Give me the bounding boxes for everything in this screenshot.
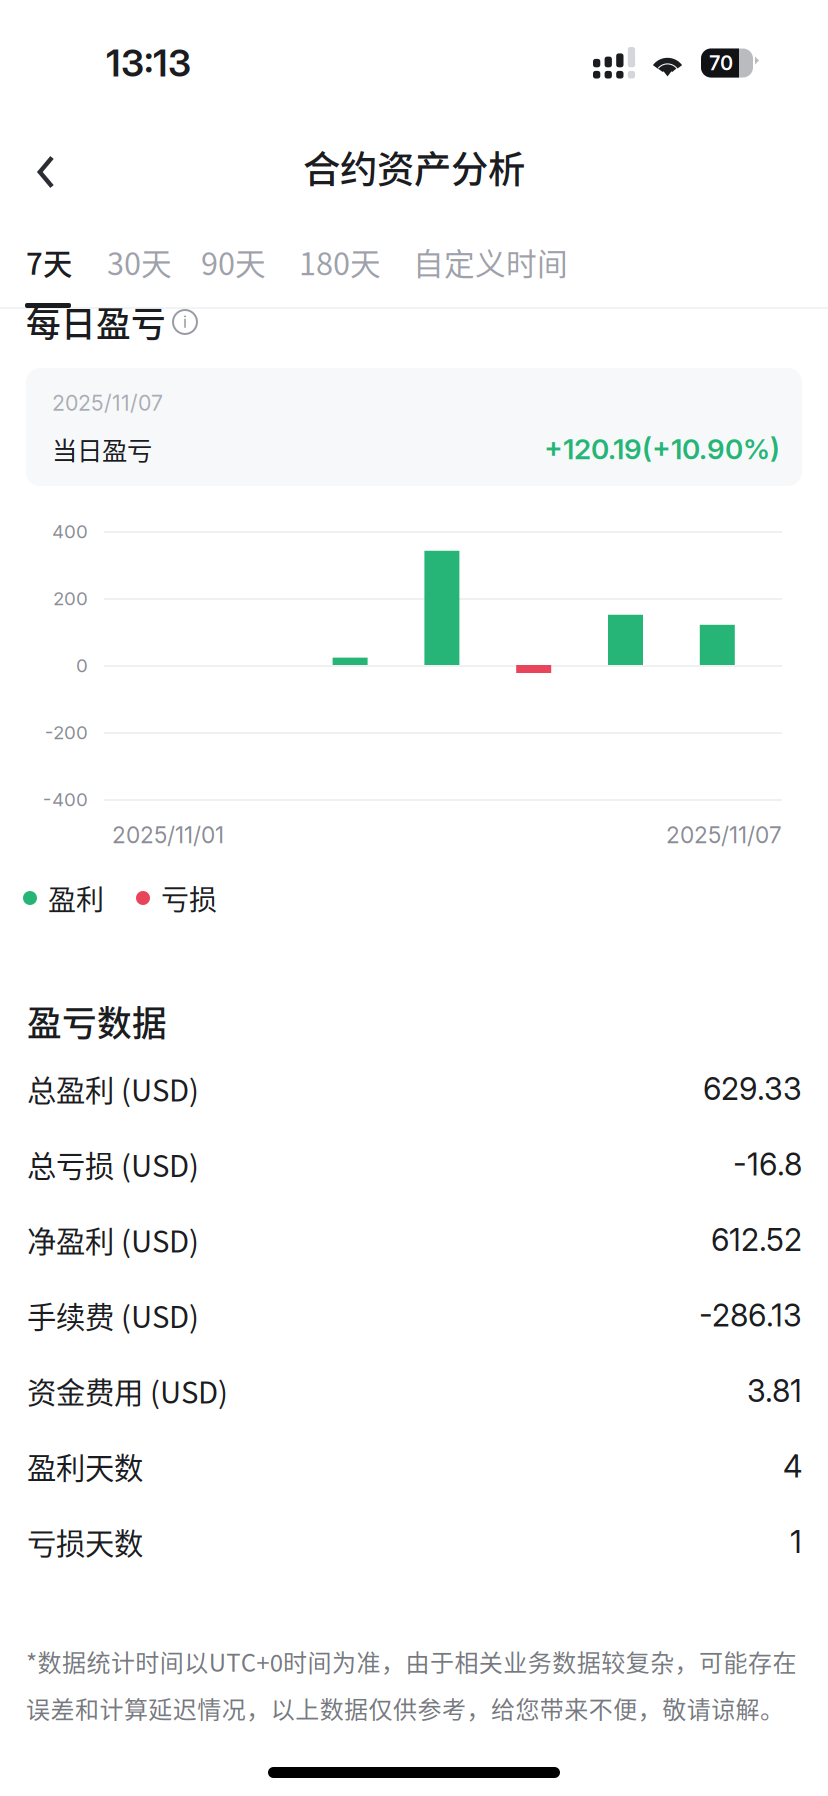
staticText: 30天	[107, 240, 172, 284]
staticText: 资金费用 (USD)	[27, 1369, 228, 1412]
staticText: 手续费 (USD)	[27, 1294, 199, 1336]
staticText: -200	[45, 721, 88, 744]
staticText: 2025/11/07	[52, 390, 163, 416]
staticText: 盈利	[48, 878, 104, 918]
staticText: 每日盈亏	[26, 297, 166, 347]
staticText: 亏损	[161, 878, 217, 918]
staticText: *数据统计时间以UTC+0时间为准，由于相关业务数据较复杂，可能存在	[26, 1644, 796, 1679]
staticText: 总盈利 (USD)	[27, 1067, 199, 1110]
staticText: 自定义时间	[413, 240, 568, 284]
staticText: 400	[52, 520, 88, 543]
staticText: 4	[783, 1448, 802, 1485]
button[interactable]: 90天	[201, 237, 266, 287]
staticText: 612.52	[711, 1221, 802, 1258]
staticText: -16.8	[733, 1146, 802, 1183]
staticText: 2025/11/01	[112, 821, 224, 849]
staticText: 70	[709, 51, 733, 75]
staticText: 629.33	[703, 1070, 802, 1107]
staticText: 2025/11/07	[666, 821, 782, 849]
staticText: 净盈利 (USD)	[27, 1218, 199, 1261]
staticText: 盈利天数	[27, 1445, 143, 1487]
staticText: -286.13	[699, 1297, 802, 1334]
staticText: -400	[43, 788, 88, 811]
staticText: 盈亏数据	[27, 996, 167, 1046]
staticText: 200	[53, 587, 88, 610]
staticText: +120.19(+10.90%)	[544, 432, 780, 466]
button[interactable]	[0, 133, 92, 201]
staticText: 180天	[299, 240, 381, 284]
staticText: 3.81	[747, 1372, 802, 1409]
staticText: 0	[76, 654, 88, 677]
staticText: 当日盈亏	[52, 431, 152, 467]
staticText: 1	[790, 1523, 802, 1560]
button[interactable]: 7天	[26, 237, 72, 287]
staticText: i	[183, 312, 187, 332]
staticText: 合约资产分析	[303, 140, 525, 194]
staticText: 13:13	[106, 40, 191, 86]
staticText: 90天	[201, 240, 266, 284]
staticText: 亏损天数	[27, 1520, 143, 1563]
staticText: 误差和计算延迟情况，以上数据仅供参考，给您带来不便，敬请谅解。	[26, 1691, 784, 1726]
button[interactable]: 180天	[299, 237, 381, 287]
button[interactable]: 自定义时间	[413, 237, 568, 287]
staticText: 7天	[26, 241, 72, 283]
button[interactable]: 30天	[107, 237, 172, 287]
staticText: 总亏损 (USD)	[27, 1143, 199, 1185]
